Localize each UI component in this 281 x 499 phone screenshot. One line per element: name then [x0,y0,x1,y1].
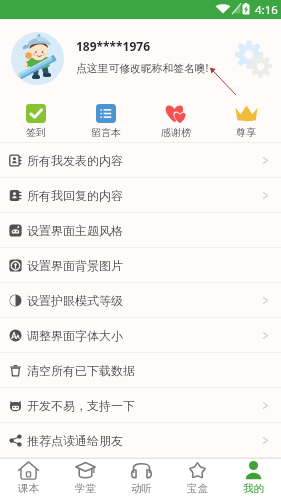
staticText: 清空所有已下载数据 [27,363,135,378]
staticText: 签到 [26,126,46,139]
button[interactable]: 设置界面主题风格 [0,213,281,248]
staticText: 所有我回复的内容 [27,188,123,203]
staticText: 推荐点读通给朋友 [27,433,123,448]
button[interactable]: Avatar [11,32,64,85]
button[interactable]: 尊享 [211,104,281,143]
button[interactable]: 宝盒 [169,460,225,499]
staticText: 4:16 [255,2,278,18]
button[interactable]: 设置界面背景图片 [0,248,281,283]
button[interactable]: 调整界面字体大小 [0,318,281,353]
staticText: 所有我发表的内容 [27,153,123,168]
button[interactable]: 所有我发表的内容 [0,143,281,178]
button[interactable]: 设置护眼模式等级 [0,283,281,318]
staticText: 我的 [243,482,264,495]
staticText: 动听 [131,482,152,495]
staticText: 宝盒 [187,482,208,495]
staticText: 点这里可修改昵称和签名噢! [76,60,209,75]
button[interactable]: 清空所有已下载数据 [0,353,281,388]
staticText: 开发不易，支持一下 [27,398,135,413]
staticText: 设置界面主题风格 [27,223,123,238]
button[interactable]: 我的 [225,460,281,499]
staticText: 设置界面背景图片 [27,258,123,273]
button[interactable]: 感谢榜 [141,104,211,143]
button[interactable]: 课本 [0,460,57,499]
staticText: 留言本 [91,126,121,139]
button[interactable]: 留言本 [71,104,141,143]
staticText: 学堂 [75,482,96,495]
button[interactable]: 签到 [0,104,71,143]
staticText: 调整界面字体大小 [27,328,123,343]
button[interactable]: 所有我回复的内容 [0,178,281,213]
staticText: 课本 [18,482,39,495]
button[interactable]: 学堂 [57,460,113,499]
button[interactable]: 推荐点读通给朋友 [0,423,281,458]
staticText: 189****1976 [76,38,151,54]
button[interactable]: 动听 [113,460,169,499]
button[interactable]: 开发不易，支持一下 [0,388,281,423]
staticText: 感谢榜 [161,126,191,139]
staticText: 尊享 [236,126,256,139]
staticText: 设置护眼模式等级 [27,293,123,308]
